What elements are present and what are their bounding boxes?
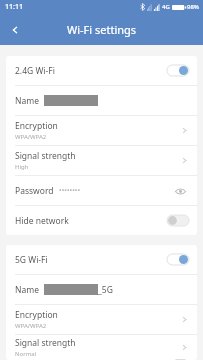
staticText: Wi-Fi settings bbox=[0, 22, 203, 37]
button[interactable]: Encryption bbox=[6, 116, 197, 145]
staticText: Normal bbox=[15, 350, 37, 358]
staticText: •••••••• bbox=[59, 186, 171, 196]
button[interactable]: Show password bbox=[171, 182, 189, 200]
staticText: Password bbox=[15, 185, 54, 197]
staticText: Name bbox=[15, 95, 39, 107]
staticText: 5G Wi-Fi bbox=[15, 254, 167, 266]
staticText: WPA/WPA2 bbox=[15, 133, 47, 141]
button[interactable]: Back bbox=[0, 15, 30, 45]
button[interactable]: Name bbox=[6, 86, 197, 115]
button[interactable]: Signal strength bbox=[6, 146, 197, 175]
staticText: 98% bbox=[187, 3, 199, 11]
staticText: WPA/WPA2 bbox=[15, 322, 47, 330]
button[interactable]: Encryption bbox=[6, 305, 197, 334]
staticText: Name bbox=[15, 284, 39, 296]
button[interactable]: Hide network bbox=[6, 206, 197, 235]
staticText: 11:11 bbox=[5, 2, 23, 12]
staticText: 4G bbox=[162, 3, 170, 11]
staticText: _5G bbox=[98, 284, 113, 296]
button[interactable]: 2.4G Wi-Fi bbox=[6, 56, 197, 85]
staticText: Signal strength bbox=[15, 337, 76, 349]
staticText: High bbox=[15, 163, 29, 171]
button[interactable]: Password bbox=[6, 176, 197, 205]
staticText: Signal strength bbox=[15, 150, 76, 162]
staticText: Encryption bbox=[15, 120, 58, 132]
staticText: 2.4G Wi-Fi bbox=[15, 65, 167, 77]
button[interactable]: Name bbox=[6, 275, 197, 304]
button[interactable]: Signal strength bbox=[6, 335, 197, 360]
staticText: Encryption bbox=[15, 309, 58, 321]
button[interactable]: 5G Wi-Fi bbox=[6, 245, 197, 274]
staticText: Hide network bbox=[15, 215, 167, 227]
